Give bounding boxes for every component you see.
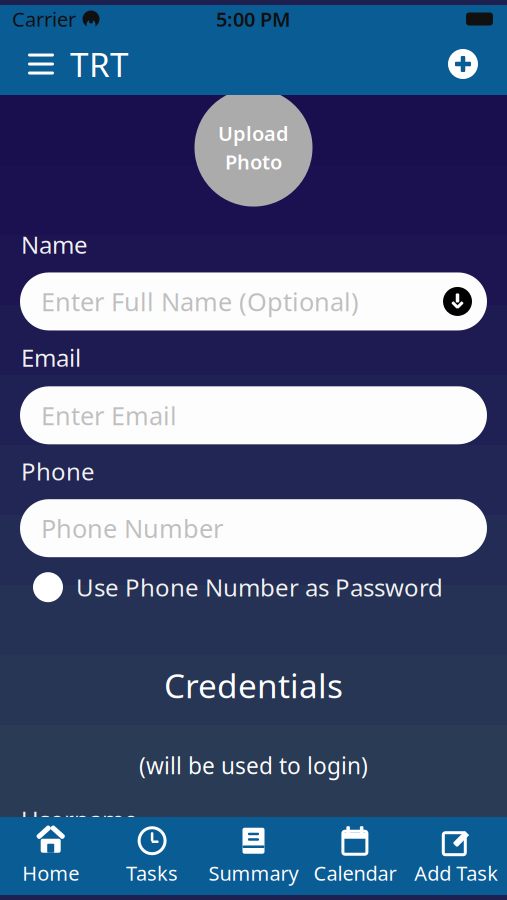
staticText: Photo [225,149,282,175]
button[interactable]: Calendar [304,817,406,895]
staticText: Upload [218,120,289,147]
staticText: Carrier [12,6,76,32]
staticText: Email [21,341,81,373]
staticText: Phone [21,455,95,487]
button[interactable]: Phone Number [20,499,487,557]
staticText: Calendar [313,860,396,886]
staticText: Credentials [164,663,343,707]
button[interactable]: Summary [203,817,304,895]
button[interactable]: Enter Full Name (Optional) [20,272,487,330]
button[interactable]: Tasks [101,817,203,895]
staticText: Summary [208,860,298,886]
button[interactable]: Add Task [406,817,507,895]
staticText: 5:00 PM [216,6,291,32]
button[interactable]: TRT [64,40,135,88]
button[interactable]: Home [0,817,101,895]
staticText: Home [22,860,79,886]
staticText: Phone Number [41,511,223,545]
button[interactable]: Use Phone Number as Password [0,565,507,609]
staticText: Enter Full Name (Optional) [41,285,359,318]
staticText: Name [21,229,88,260]
staticText: (will be used to login) [139,750,368,781]
staticText: TRT [70,42,129,86]
staticText: Add Task [414,860,498,886]
button[interactable]: Menu [18,40,64,88]
button[interactable]: Enter Email [20,386,487,444]
button[interactable]: Add [439,40,487,88]
staticText: Tasks [126,860,178,886]
staticText: Username [21,804,138,835]
button[interactable]: Upload Photo [194,89,312,207]
staticText: Use Phone Number as Password [76,571,443,603]
staticText: Enter Email [41,398,177,432]
